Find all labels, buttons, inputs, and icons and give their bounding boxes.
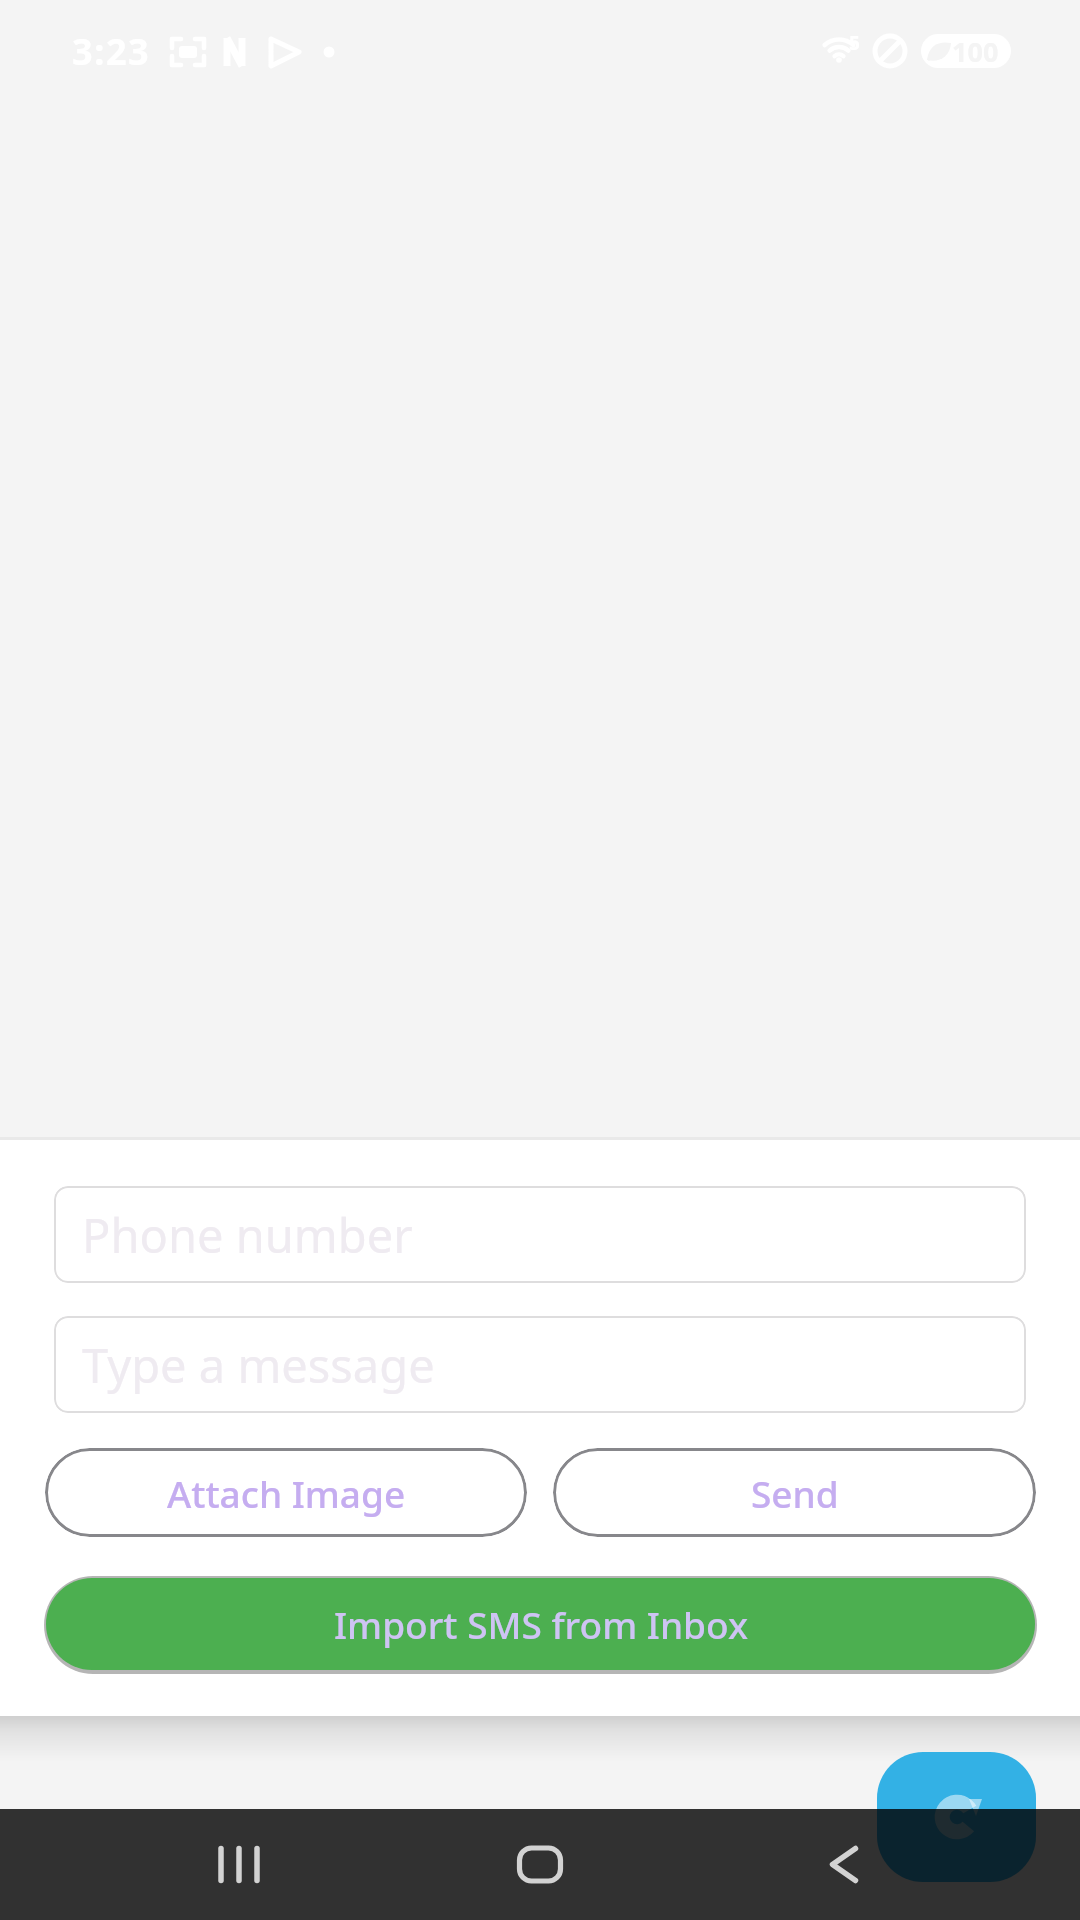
button[interactable]: Import SMS from Inbox <box>46 1578 1035 1670</box>
staticText: Attach Image <box>167 1468 406 1518</box>
staticText: Import SMS from Inbox <box>334 1599 748 1649</box>
button[interactable]: Refresh <box>877 1752 1036 1882</box>
staticText: Phone number <box>82 1203 413 1267</box>
staticText: 3:23 <box>72 27 151 76</box>
button[interactable]: Recent apps <box>174 1809 304 1920</box>
staticText: 5 <box>849 30 860 56</box>
staticText: Send <box>751 1468 839 1518</box>
button[interactable]: Home <box>475 1809 605 1920</box>
button[interactable]: Phone number <box>54 1186 1026 1283</box>
staticText: 100 <box>952 33 999 70</box>
button[interactable]: Type a message <box>54 1316 1026 1413</box>
button[interactable]: Back <box>779 1809 909 1920</box>
button[interactable]: Attach Image <box>45 1448 527 1537</box>
button[interactable]: Send <box>553 1448 1036 1537</box>
staticText: Type a message <box>82 1333 435 1397</box>
